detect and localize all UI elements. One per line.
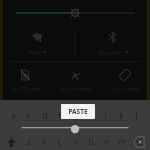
button[interactable]: j <box>100 108 111 123</box>
staticText: v <box>73 136 78 148</box>
button[interactable]: PASTE <box>61 104 95 119</box>
button[interactable]: Backspace <box>132 135 146 149</box>
button[interactable]: z <box>23 134 34 150</box>
staticText: Airplane mode <box>58 86 93 93</box>
button[interactable]: m <box>116 134 127 150</box>
button[interactable]: h <box>85 108 96 123</box>
button[interactable]: Bluetooth <box>75 26 150 61</box>
button[interactable]: g <box>70 108 81 123</box>
button[interactable]: a <box>8 108 19 123</box>
button[interactable]: Wi-Fi <box>0 26 74 61</box>
button[interactable]: Brightness <box>0 0 150 26</box>
button[interactable]: v <box>70 134 81 150</box>
button[interactable]: Airplane mode <box>50 62 100 100</box>
staticText: z <box>27 136 31 148</box>
button[interactable]: Auto-rotate <box>100 62 150 100</box>
staticText: d <box>42 110 48 122</box>
staticText: a <box>11 110 16 122</box>
staticText: No SIM card <box>11 86 40 93</box>
button[interactable]: No SIM card <box>0 62 50 100</box>
button[interactable]: s <box>23 108 34 123</box>
staticText: b <box>88 136 94 148</box>
staticText: Wi-Fi <box>29 49 41 56</box>
button[interactable]: d <box>39 108 50 123</box>
button[interactable]: n <box>101 134 112 150</box>
button[interactable]: b <box>85 134 96 150</box>
staticText: Auto-rotate <box>112 86 139 93</box>
staticText: n <box>104 136 110 148</box>
staticText: j <box>104 110 107 122</box>
staticText: PASTE <box>68 107 88 116</box>
staticText: k <box>119 110 124 122</box>
button[interactable]: l <box>131 108 142 123</box>
button[interactable]: c <box>54 134 65 150</box>
staticText: s <box>26 110 31 122</box>
staticText: c <box>57 136 62 148</box>
staticText: l <box>135 110 138 122</box>
staticText: m <box>118 136 126 148</box>
staticText: f <box>58 110 61 122</box>
staticText: h <box>88 110 94 122</box>
button[interactable]: k <box>116 108 127 123</box>
button[interactable]: f <box>54 108 65 123</box>
staticText: x <box>41 136 46 148</box>
button[interactable]: x <box>38 134 49 150</box>
staticText: g <box>73 110 79 122</box>
staticText: Bluetooth <box>98 49 123 56</box>
button[interactable]: Shift <box>4 135 18 149</box>
